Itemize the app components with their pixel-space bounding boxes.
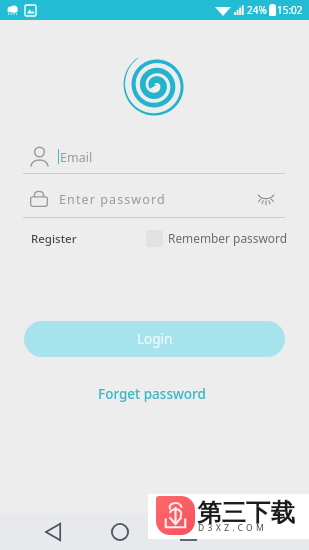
button[interactable]: Home <box>102 514 138 550</box>
staticText: Register <box>31 231 77 247</box>
staticText: Forget password <box>98 385 206 403</box>
button[interactable]: Forget password <box>88 383 216 405</box>
button[interactable]: Recent apps <box>170 514 206 550</box>
staticText: Login <box>137 330 173 348</box>
button[interactable]: Remember password <box>146 228 287 248</box>
staticText: Remember password <box>168 230 287 246</box>
staticText: Enter password <box>59 191 166 208</box>
button[interactable]: Show password <box>252 184 280 212</box>
staticText: Email <box>60 149 93 166</box>
staticText: 第三下载 <box>197 497 295 528</box>
button[interactable]: Back <box>35 514 71 550</box>
staticText: D3XZ.COM <box>198 522 268 534</box>
button[interactable]: Register <box>24 228 84 250</box>
button[interactable]: Login <box>24 321 285 357</box>
staticText: 15:02 <box>277 3 303 17</box>
staticText: 24% <box>247 3 267 17</box>
